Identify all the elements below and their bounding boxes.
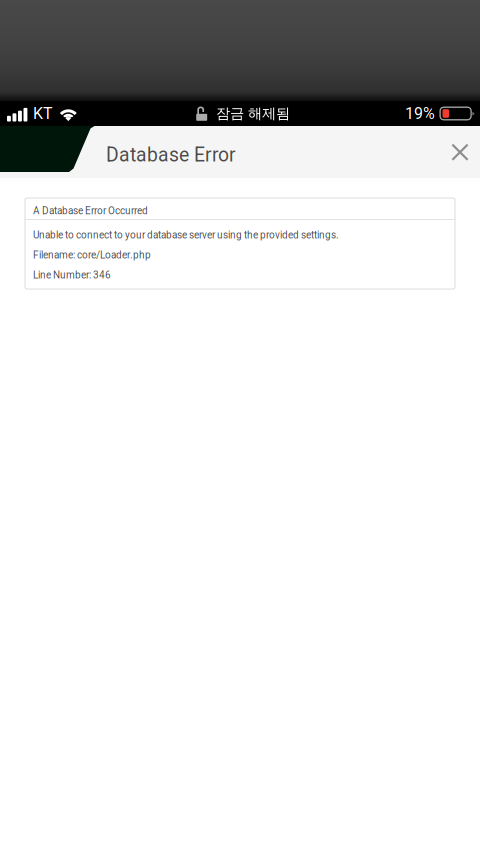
staticText: Database Error: [106, 144, 236, 166]
staticText: Line Number: 346: [33, 269, 111, 281]
button[interactable]: Close: [435, 126, 479, 178]
staticText: 19%: [405, 104, 435, 123]
staticText: 잠금 해제됨: [216, 104, 290, 122]
staticText: Unable to connect to your database serve…: [33, 229, 339, 241]
staticText: A Database Error Occurred: [33, 205, 148, 217]
staticText: KT: [33, 104, 53, 123]
staticText: Filename: core/Loader.php: [33, 249, 151, 261]
